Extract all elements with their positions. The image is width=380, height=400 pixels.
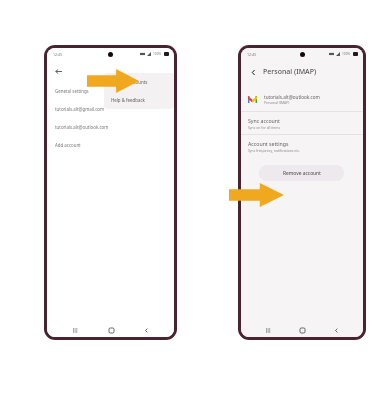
staticText: Manage accounts bbox=[111, 79, 148, 85]
staticText: 100% bbox=[342, 52, 351, 56]
button[interactable]: General settings bbox=[47, 82, 174, 100]
staticText: Sync on for all items bbox=[248, 125, 281, 130]
staticText: Sync account bbox=[248, 117, 280, 124]
button[interactable]: Back bbox=[51, 64, 65, 78]
button[interactable]: Add account bbox=[47, 136, 174, 154]
button[interactable]: tutorials.alt@outlook.com bbox=[47, 118, 174, 136]
staticText: Personal (IMAP) bbox=[263, 67, 317, 77]
staticText: General settings bbox=[55, 88, 89, 94]
staticText: Personal (IMAP) bbox=[264, 100, 290, 105]
button[interactable]: Back bbox=[329, 323, 343, 337]
button[interactable]: Account settings bbox=[241, 135, 363, 157]
staticText: 12:45 bbox=[247, 52, 257, 57]
button[interactable]: tutorials.alt@outlook.com bbox=[241, 87, 363, 111]
button[interactable]: Home bbox=[104, 323, 118, 337]
button[interactable]: Back bbox=[247, 66, 259, 78]
button[interactable]: tutorials.alt@gmail.com bbox=[47, 100, 174, 118]
staticText: tutorials.alt@gmail.com bbox=[55, 106, 105, 112]
button[interactable]: Sync account bbox=[241, 112, 363, 134]
button[interactable]: Manage accounts bbox=[104, 73, 174, 91]
button[interactable]: Recents bbox=[261, 323, 275, 337]
staticText: Account settings bbox=[248, 140, 289, 147]
staticText: Sync frequency, notifications etc. bbox=[248, 148, 301, 153]
staticText: 12:45 bbox=[53, 52, 63, 57]
button[interactable]: Home bbox=[295, 323, 309, 337]
staticText: tutorials.alt@outlook.com bbox=[264, 94, 320, 100]
staticText: Remove account bbox=[283, 170, 321, 177]
button[interactable]: Back bbox=[139, 323, 153, 337]
button[interactable]: Remove account bbox=[259, 165, 344, 181]
staticText: Help & feedback bbox=[111, 97, 145, 103]
button[interactable]: Help & feedback bbox=[104, 91, 174, 109]
button[interactable]: Recents bbox=[68, 323, 82, 337]
staticText: 100% bbox=[153, 52, 162, 56]
staticText: Add account bbox=[55, 142, 81, 148]
staticText: tutorials.alt@outlook.com bbox=[55, 124, 109, 130]
